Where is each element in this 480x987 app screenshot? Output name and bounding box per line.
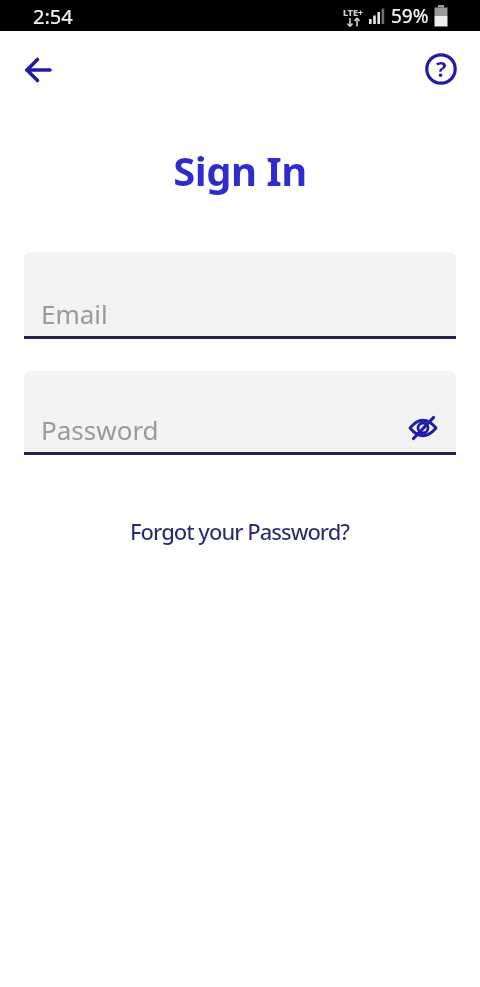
- staticText: Email: [41, 296, 108, 331]
- button[interactable]: Email: [24, 252, 456, 339]
- button[interactable]: [18, 50, 58, 90]
- staticText: 2:54: [33, 3, 73, 30]
- staticText: Sign In: [0, 143, 480, 197]
- button[interactable]: Password: [24, 371, 456, 455]
- staticText: ?: [436, 53, 447, 83]
- button[interactable]: [402, 407, 444, 449]
- button[interactable]: Forgot your Password?: [124, 512, 356, 550]
- staticText: LTE+: [343, 6, 364, 18]
- staticText: 59%: [391, 3, 429, 29]
- button[interactable]: ?: [422, 50, 460, 88]
- staticText: Password: [41, 412, 159, 447]
- staticText: Forgot your Password?: [130, 516, 350, 546]
